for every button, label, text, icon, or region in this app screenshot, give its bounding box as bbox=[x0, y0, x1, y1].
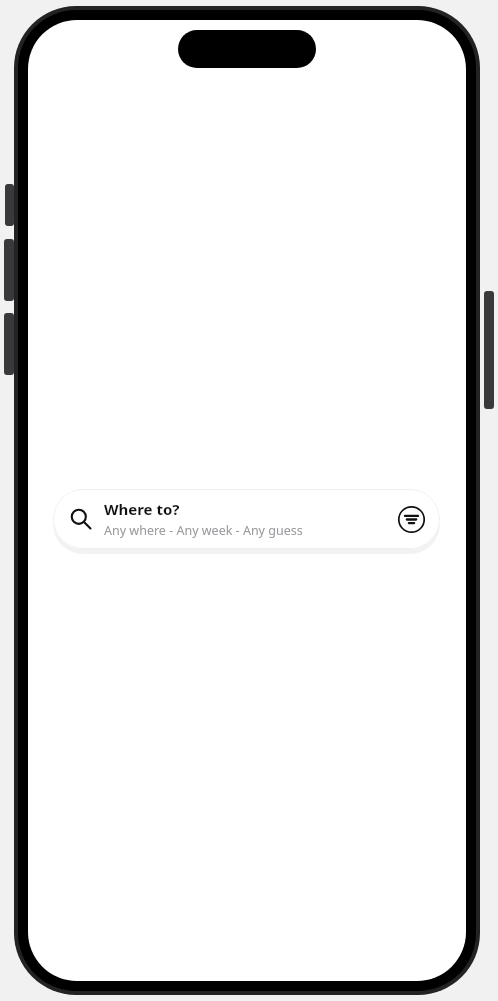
staticText: Where to? bbox=[104, 499, 180, 519]
button[interactable]: Where to? bbox=[53, 489, 440, 549]
staticText: Any where - Any week - Any guess bbox=[104, 522, 303, 539]
button[interactable]: Filters bbox=[396, 504, 427, 535]
